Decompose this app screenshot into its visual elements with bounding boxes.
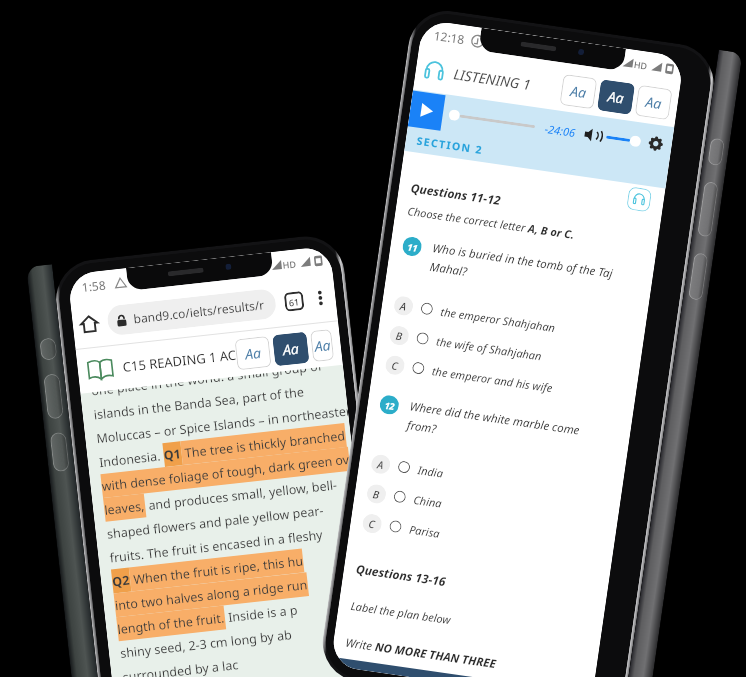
button[interactable]: Text size bbox=[635, 85, 673, 120]
staticText: Q1 bbox=[163, 445, 183, 464]
staticText: and produces small, yellow, bell- bbox=[144, 476, 338, 514]
button[interactable]: Play bbox=[408, 90, 445, 131]
button[interactable]: Playback settings bbox=[648, 136, 664, 152]
staticText: 12:18 bbox=[433, 27, 466, 47]
staticText: Aa bbox=[282, 339, 300, 359]
staticText: shaped flowers and pale yellow pear- bbox=[106, 502, 325, 543]
staticText: Aa bbox=[314, 335, 332, 356]
staticText: the emperor Shahjahan bbox=[440, 304, 557, 335]
staticText: B bbox=[395, 329, 404, 343]
staticText: C15 READING 1 AC bbox=[122, 346, 237, 376]
staticText: India bbox=[417, 462, 445, 481]
staticText: Aa bbox=[607, 86, 625, 108]
button[interactable]: A bbox=[369, 447, 613, 512]
staticText: C bbox=[368, 517, 377, 532]
staticText: band9.co/ielts/results/r bbox=[133, 296, 266, 326]
staticText: SECTION 2 bbox=[416, 134, 484, 157]
button[interactable]: Text size bbox=[597, 79, 635, 115]
staticText: the wife of Shahjahan bbox=[435, 333, 543, 364]
staticText: surrounded by a lac bbox=[122, 656, 240, 677]
staticText: Write NO MORE THAN THREE bbox=[344, 635, 497, 672]
button[interactable]: Audio bbox=[626, 186, 652, 212]
button[interactable]: C bbox=[361, 507, 604, 571]
staticText: Where did the white marble come from? bbox=[406, 398, 581, 457]
staticText: Aa bbox=[244, 343, 262, 363]
staticText: Aa bbox=[644, 92, 663, 113]
staticText: 12 bbox=[384, 399, 395, 412]
staticText: Questions 11-12 bbox=[410, 179, 502, 208]
staticText: Indonesia. bbox=[98, 447, 165, 471]
staticText: with dense foliage of tough, dark green … bbox=[101, 451, 350, 495]
staticText: islands in the Banda Sea, part of the bbox=[93, 383, 305, 423]
staticText: 1:58 bbox=[81, 276, 106, 295]
staticText: the emperor and his wife bbox=[431, 363, 554, 395]
staticText: shiny seed, 2-3 cm long by ab bbox=[119, 626, 293, 662]
staticText: Questions 13-16 bbox=[355, 560, 447, 589]
staticText: -24:06 bbox=[544, 121, 577, 140]
staticText: Who is buried in the tomb of the Taj Mah… bbox=[429, 240, 614, 300]
staticText: A bbox=[376, 457, 385, 472]
button[interactable]: More options bbox=[311, 288, 329, 308]
staticText: fruits. The fruit is encased in a fleshy bbox=[109, 526, 324, 567]
staticText: 61 bbox=[288, 295, 300, 308]
button[interactable]: Seek bbox=[459, 114, 535, 128]
button[interactable]: B bbox=[365, 477, 609, 541]
staticText: Inside is a p bbox=[224, 601, 298, 626]
button[interactable]: Tabs bbox=[284, 291, 305, 312]
staticText: Choose the correct letter A, B or C. bbox=[407, 203, 576, 242]
button[interactable]: Text size bbox=[272, 332, 309, 366]
staticText: length of the fruit. bbox=[117, 609, 226, 638]
button[interactable]: band9.co/ielts/results/r bbox=[115, 289, 268, 335]
button[interactable]: B bbox=[388, 319, 632, 383]
staticText: LISTENING 1 bbox=[452, 64, 532, 94]
staticText: HD bbox=[633, 58, 649, 72]
staticText: Aa bbox=[569, 81, 588, 102]
button[interactable]: Text size bbox=[310, 329, 334, 362]
staticText: leaves, bbox=[103, 497, 146, 519]
staticText: A bbox=[399, 299, 408, 314]
staticText: Q2 bbox=[111, 572, 131, 590]
button[interactable]: Home bbox=[79, 313, 100, 334]
staticText: HD bbox=[282, 257, 297, 271]
staticText: Label the plan below bbox=[350, 598, 452, 627]
staticText: one place in the world: a small group of bbox=[91, 367, 323, 400]
staticText: The tree is thickly branched bbox=[181, 427, 347, 462]
staticText: Moluccas – or Spice Islands – in northea… bbox=[96, 403, 349, 447]
button[interactable]: C bbox=[383, 349, 627, 413]
button[interactable]: Mute bbox=[583, 126, 600, 143]
button[interactable]: A bbox=[392, 289, 636, 353]
staticText: into two halves along a ridge run bbox=[114, 576, 309, 614]
button[interactable]: Text size bbox=[234, 336, 272, 370]
staticText: Parisa bbox=[408, 521, 441, 541]
staticText: When the fruit is ripe, this hu bbox=[129, 552, 304, 588]
staticText: China bbox=[412, 492, 443, 511]
staticText: B bbox=[372, 487, 381, 502]
button[interactable]: Text size bbox=[559, 74, 597, 109]
staticText: 11 bbox=[407, 240, 418, 254]
staticText: C bbox=[390, 358, 399, 373]
